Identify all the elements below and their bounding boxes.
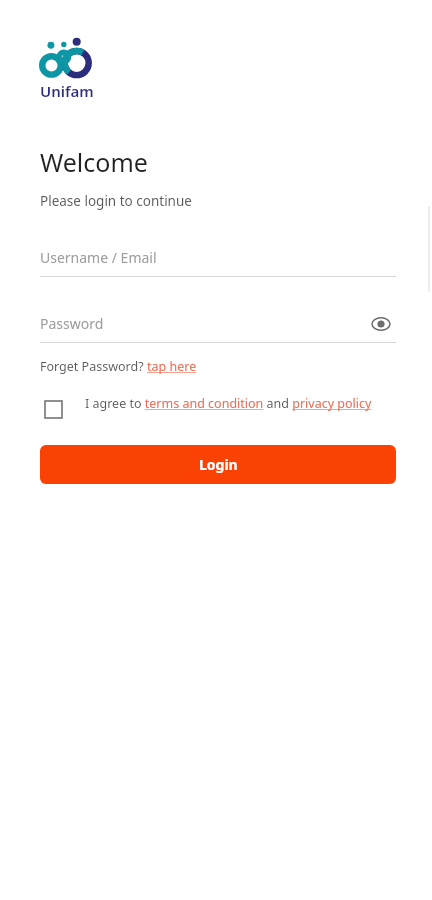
- button[interactable]: Login: [40, 445, 396, 484]
- staticText: Unifam: [40, 81, 94, 101]
- staticText: tap here: [147, 358, 197, 375]
- button[interactable]: I agree checkbox: [40, 396, 66, 422]
- button[interactable]: Username / Email: [40, 239, 396, 277]
- button[interactable]: I agree to terms and condition and priva…: [85, 395, 396, 412]
- button[interactable]: Password: [40, 305, 396, 343]
- staticText: Welcome: [40, 145, 148, 179]
- staticText: Forget Password?: [40, 358, 147, 375]
- staticText: Please login to continue: [40, 192, 192, 210]
- staticText: Password: [40, 314, 366, 333]
- staticText: Username / Email: [40, 248, 157, 267]
- button[interactable]: Show password: [366, 309, 396, 339]
- button[interactable]: tap here: [147, 358, 197, 375]
- staticText: I agree to terms and condition and priva…: [85, 395, 372, 412]
- staticText: Login: [199, 455, 238, 474]
